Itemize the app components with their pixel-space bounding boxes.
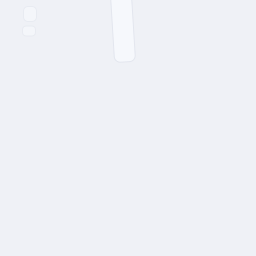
button[interactable]: Placeholder tile <box>22 26 35 36</box>
button[interactable]: Card <box>112 0 133 62</box>
button[interactable]: Placeholder tile <box>23 6 36 21</box>
